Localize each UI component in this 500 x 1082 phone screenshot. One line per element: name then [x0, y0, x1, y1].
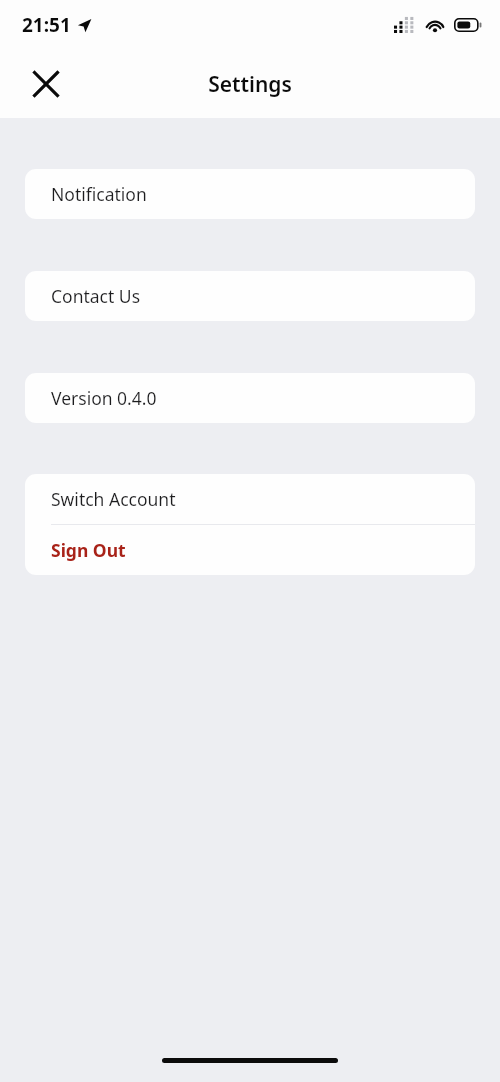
- button[interactable]: Switch Account: [25, 474, 475, 524]
- staticText: 21:51: [22, 12, 71, 38]
- staticText: Version 0.4.0: [51, 386, 157, 410]
- staticText: Switch Account: [51, 487, 176, 511]
- button[interactable]: Notification: [25, 169, 475, 219]
- staticText: Settings: [0, 70, 500, 99]
- staticText: Contact Us: [51, 284, 141, 308]
- button[interactable]: Close: [22, 60, 70, 108]
- staticText: Notification: [51, 182, 147, 206]
- button[interactable]: Version 0.4.0: [25, 373, 475, 423]
- staticText: Sign Out: [51, 538, 126, 562]
- button[interactable]: Contact Us: [25, 271, 475, 321]
- button[interactable]: Sign Out: [25, 525, 475, 575]
